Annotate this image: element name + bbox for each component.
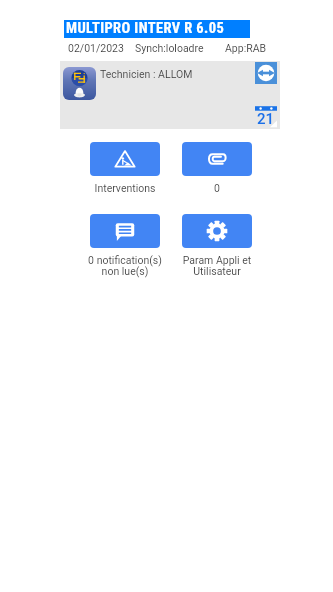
staticText: Param Appli et Utilisateur [160, 254, 274, 277]
button[interactable]: Application [63, 67, 96, 100]
button[interactable]: Agenda [255, 105, 277, 127]
button[interactable]: TeamViewer [255, 62, 277, 84]
staticText: App:RAB [225, 42, 267, 54]
button[interactable]: Interventions [90, 142, 160, 176]
staticText: Technicien : ALLOM [100, 68, 193, 80]
staticText: Interventions [68, 182, 182, 194]
button[interactable]: MULTIPRO INTERV R 6.05 [64, 20, 250, 38]
staticText: 0 [160, 182, 274, 194]
staticText: MULTIPRO INTERV R 6.05 [66, 20, 225, 37]
button[interactable]: Parametres [182, 214, 252, 248]
button[interactable]: Notifications [90, 214, 160, 248]
staticText: 21 [257, 110, 275, 128]
staticText: Synch:loloadre [135, 42, 204, 54]
button[interactable]: Documents [182, 142, 252, 176]
staticText: 02/01/2023 [68, 42, 124, 54]
staticText: 0 notification(s) non lue(s) [68, 254, 182, 277]
